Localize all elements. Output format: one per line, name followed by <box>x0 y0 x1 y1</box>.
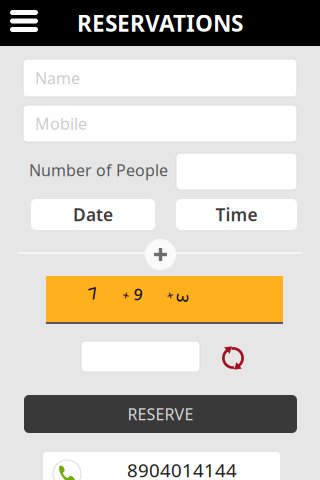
staticText: Mobile <box>35 113 87 134</box>
staticText: Date <box>73 203 113 226</box>
button[interactable]: Menu <box>0 0 48 46</box>
button[interactable]: Time <box>176 199 297 230</box>
button[interactable]: Captcha answer <box>81 341 200 372</box>
staticText: 3 <box>178 287 187 309</box>
staticText: + <box>122 287 129 303</box>
staticText: + <box>166 287 173 303</box>
button[interactable]: Refresh captcha <box>219 344 246 371</box>
button[interactable]: RESERVE <box>24 395 297 433</box>
button[interactable]: Date <box>31 199 155 230</box>
button[interactable]: Mobile <box>23 105 297 142</box>
staticText: Number of People <box>29 159 168 181</box>
button[interactable]: Number of people <box>176 153 297 190</box>
staticText: Name <box>35 67 80 89</box>
staticText: Time <box>215 203 257 226</box>
staticText: RESERVE <box>127 403 193 425</box>
button[interactable]: 8904014144 <box>43 452 280 480</box>
staticText: 7 <box>88 282 97 304</box>
staticText: 8904014144 <box>127 458 237 480</box>
button[interactable]: Name <box>23 59 297 97</box>
staticText: RESERVATIONS <box>77 8 243 38</box>
button[interactable]: Add <box>145 239 176 270</box>
staticText: 9 <box>133 283 142 305</box>
